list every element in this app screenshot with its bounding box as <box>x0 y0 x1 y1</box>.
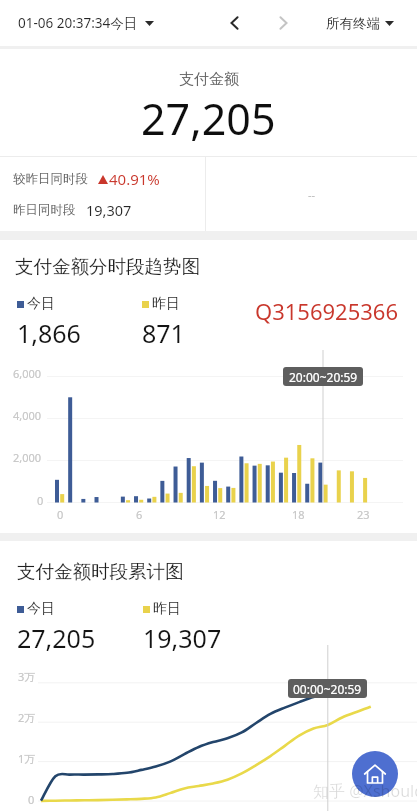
staticText: 27,205 <box>17 621 96 655</box>
staticText: 2万 <box>18 710 36 725</box>
staticText: 19,307 <box>143 621 222 655</box>
staticText: 6,000 <box>13 366 42 381</box>
staticText: 昨日同时段 <box>13 202 76 218</box>
staticText: 支付金额分时段趋势图 <box>15 255 200 278</box>
staticText: 3万 <box>18 669 36 684</box>
staticText: 00:00~20:59 <box>293 681 362 697</box>
staticText: 昨日 <box>152 295 180 313</box>
button[interactable]: Previous day <box>220 8 250 38</box>
staticText: 6 <box>136 507 143 522</box>
button[interactable]: Home <box>352 751 398 797</box>
button[interactable]: 所有终端 <box>318 15 417 32</box>
staticText: 19,307 <box>86 200 132 220</box>
staticText: 今日 <box>27 600 55 618</box>
staticText: 所有终端 <box>326 15 380 32</box>
staticText: -- <box>308 187 316 202</box>
staticText: 18 <box>292 507 305 522</box>
staticText: 支付金额 <box>179 70 239 89</box>
staticText: 27,205 <box>141 89 276 148</box>
staticText: 1万 <box>18 751 36 766</box>
staticText: 20:00~20:59 <box>289 369 358 385</box>
staticText: 2,000 <box>13 450 42 465</box>
staticText: 0 <box>37 493 44 508</box>
staticText: 支付金额时段累计图 <box>17 560 184 583</box>
staticText: 12 <box>213 507 226 522</box>
staticText: 今日 <box>27 295 55 313</box>
staticText: 40.91% <box>109 169 160 189</box>
staticText: 较昨日同时段 <box>13 171 88 187</box>
button[interactable]: Next day <box>268 8 298 38</box>
button[interactable]: 01-06 20:37:34今日 <box>0 14 162 32</box>
staticText: 昨日 <box>153 600 181 618</box>
staticText: 01-06 20:37:34今日 <box>18 14 138 32</box>
staticText: 4,000 <box>13 408 42 423</box>
staticText: 871 <box>142 316 185 350</box>
staticText: 0 <box>57 507 64 522</box>
staticText: 知乎 @Xshould <box>313 780 417 802</box>
staticText: Q3156925366 <box>255 296 399 326</box>
staticText: 0 <box>28 792 35 807</box>
staticText: 1,866 <box>17 316 81 350</box>
staticText: 23 <box>357 507 370 522</box>
